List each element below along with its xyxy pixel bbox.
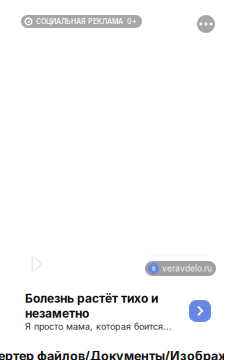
staticText: ертер файлов/Документы/Изображе <box>0 348 226 360</box>
button[interactable]: в <box>145 261 216 276</box>
staticText: незаметно <box>25 306 89 321</box>
staticText: СОЦИАЛЬНАЯ РЕКЛАМА 0+ <box>36 17 137 26</box>
button[interactable]: Open advertiser site <box>189 300 211 322</box>
button[interactable]: More options <box>197 15 215 33</box>
staticText: Болезнь растёт тихо и <box>25 291 158 306</box>
staticText: в <box>152 265 155 272</box>
staticText: veravdelo.ru <box>162 263 212 274</box>
button[interactable]: СОЦИАЛЬНАЯ РЕКЛАМА 0+ <box>21 15 142 28</box>
staticText: Я просто мама, которая боится... <box>25 321 172 332</box>
